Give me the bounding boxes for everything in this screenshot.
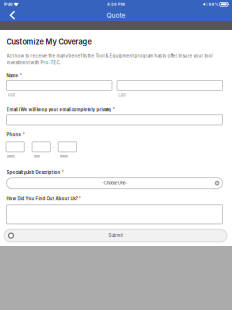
button[interactable]: Submit (4, 229, 227, 242)
staticText: - (52, 144, 54, 149)
staticText: 4:39 PM (107, 2, 125, 7)
staticText: Phone (6, 132, 21, 137)
staticText: How Did You Find Out About Us? (6, 196, 77, 201)
staticText: #### (59, 154, 67, 159)
staticText: Act now to receive the many benefits the… (6, 53, 212, 65)
staticText: Specialty/Job Description (6, 170, 60, 175)
staticText: (###) (6, 154, 14, 159)
staticText: -Choose One- (102, 181, 127, 186)
staticText: ### (33, 154, 39, 159)
staticText: * (23, 132, 25, 137)
button[interactable]: -Choose One- (6, 178, 222, 189)
staticText: Quote (106, 11, 125, 19)
staticText: Email (We will keep your email completel… (6, 107, 111, 112)
staticText: Customize My Coverage (6, 37, 91, 46)
staticText: * (62, 170, 64, 175)
staticText: * (113, 107, 115, 112)
staticText: First (8, 93, 15, 97)
staticText: * (79, 196, 81, 201)
staticText: Name (6, 73, 18, 78)
staticText: iPad (4, 2, 12, 7)
staticText: - (26, 144, 28, 149)
staticText: Last (118, 93, 125, 97)
button[interactable]: Back (4, 8, 21, 23)
staticText: 99% (209, 2, 219, 7)
staticText: * (20, 73, 22, 78)
staticText: Submit (108, 233, 122, 238)
